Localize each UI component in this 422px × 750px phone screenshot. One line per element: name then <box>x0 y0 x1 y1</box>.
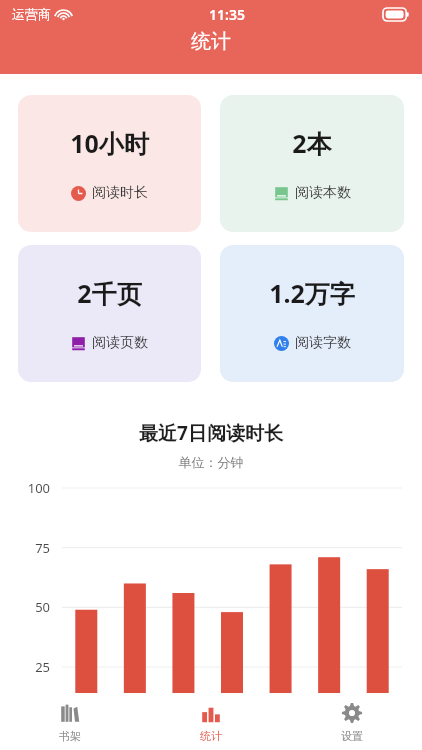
staticText: 阅读时长 <box>92 184 148 202</box>
staticText: 书架 <box>59 729 81 743</box>
staticText: 最近7日阅读时长 <box>0 420 422 446</box>
staticText: 2本 <box>292 126 332 160</box>
staticText: 设置 <box>341 729 363 743</box>
button[interactable]: 10小时 <box>18 95 201 232</box>
button[interactable]: 书架 <box>0 694 140 750</box>
button[interactable]: 2千页 <box>18 245 201 382</box>
button[interactable]: 统计 <box>140 694 281 750</box>
staticText: 75 <box>0 539 50 557</box>
staticText: 统计 <box>191 29 231 54</box>
button[interactable]: 设置 <box>281 694 422 750</box>
staticText: 100 <box>0 479 50 497</box>
staticText: 统计 <box>200 729 222 743</box>
staticText: 阅读字数 <box>295 334 351 352</box>
staticText: 10小时 <box>70 126 149 160</box>
staticText: 单位：分钟 <box>0 454 422 470</box>
staticText: 25 <box>0 658 50 676</box>
staticText: 阅读页数 <box>92 334 148 352</box>
button[interactable]: 1.2万字 <box>220 245 404 382</box>
staticText: 50 <box>0 598 50 616</box>
staticText: 运营商 <box>12 6 51 22</box>
staticText: 2千页 <box>77 276 142 310</box>
staticText: 1.2万字 <box>269 276 355 310</box>
staticText: 阅读本数 <box>295 184 351 202</box>
staticText: 11:35 <box>209 5 245 24</box>
button[interactable]: 2本 <box>220 95 404 232</box>
